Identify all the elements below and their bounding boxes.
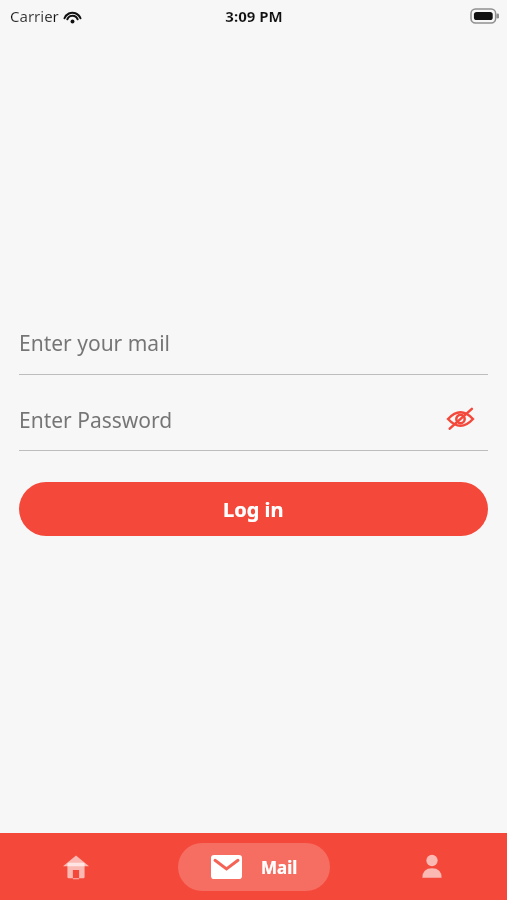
staticText: Carrier <box>10 6 59 26</box>
staticText: Log in <box>223 496 284 523</box>
button[interactable]: Show password <box>442 401 478 437</box>
button[interactable]: Enter your mail <box>19 320 488 375</box>
button[interactable]: Home <box>0 833 152 900</box>
button[interactable]: Log in <box>19 482 488 536</box>
staticText: Enter Password <box>19 406 173 435</box>
button[interactable]: Enter Password <box>19 397 488 451</box>
staticText: 3:09 PM <box>225 6 283 26</box>
button[interactable]: Mail <box>178 843 330 891</box>
staticText: Mail <box>261 856 298 879</box>
staticText: Enter your mail <box>19 329 170 358</box>
button[interactable]: Profile <box>356 833 507 900</box>
